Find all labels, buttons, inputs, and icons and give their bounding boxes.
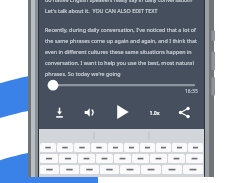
staticText: Recently, during daily conversation, I'v… bbox=[45, 26, 198, 77]
button[interactable] bbox=[186, 154, 203, 163]
button[interactable] bbox=[57, 143, 73, 152]
button[interactable] bbox=[80, 165, 99, 174]
button[interactable] bbox=[168, 154, 185, 163]
button[interactable] bbox=[132, 154, 149, 163]
button[interactable]: do native English speakers really say in… bbox=[45, 0, 198, 81]
button[interactable] bbox=[108, 143, 123, 152]
staticText: 16:35 bbox=[185, 88, 198, 95]
button[interactable]: Share bbox=[174, 102, 194, 122]
button[interactable] bbox=[188, 143, 203, 152]
button[interactable] bbox=[40, 154, 58, 163]
button[interactable] bbox=[141, 165, 161, 174]
staticText: 1.0x bbox=[149, 109, 160, 116]
button[interactable]: 16:35 bbox=[39, 81, 204, 95]
button[interactable] bbox=[59, 154, 77, 163]
button[interactable] bbox=[124, 143, 139, 152]
button[interactable] bbox=[150, 154, 167, 163]
button[interactable]: Download bbox=[49, 102, 69, 122]
button[interactable] bbox=[162, 165, 182, 174]
button[interactable] bbox=[60, 165, 79, 174]
button[interactable] bbox=[183, 165, 203, 174]
button[interactable] bbox=[91, 143, 107, 152]
button[interactable] bbox=[156, 143, 171, 152]
button[interactable] bbox=[120, 165, 140, 174]
button[interactable] bbox=[96, 154, 113, 163]
button[interactable]: Play bbox=[109, 99, 135, 125]
button[interactable] bbox=[114, 154, 131, 163]
button[interactable] bbox=[100, 165, 119, 174]
staticText: do native English speakers really say in… bbox=[45, 0, 198, 14]
button[interactable] bbox=[40, 143, 56, 152]
button[interactable] bbox=[74, 143, 90, 152]
button[interactable]: Volume bbox=[79, 102, 99, 122]
button[interactable]: 1.0x bbox=[144, 102, 164, 122]
button[interactable] bbox=[172, 143, 187, 152]
button[interactable] bbox=[140, 143, 155, 152]
button[interactable] bbox=[40, 165, 59, 174]
button[interactable] bbox=[78, 154, 95, 163]
